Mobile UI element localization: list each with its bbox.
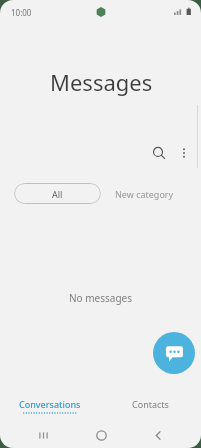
staticText: Conversations xyxy=(19,398,81,410)
staticText: All xyxy=(52,188,63,200)
button[interactable]: New category xyxy=(115,183,174,204)
staticText: 10:00 xyxy=(11,7,32,18)
button[interactable]: Recent apps xyxy=(31,423,55,447)
staticText: No messages xyxy=(0,291,201,305)
button[interactable]: New conversation xyxy=(153,332,195,374)
staticText: New category xyxy=(115,188,174,200)
button[interactable]: Back xyxy=(146,423,170,447)
staticText: Messages xyxy=(50,67,153,97)
button[interactable]: Contacts xyxy=(100,394,201,418)
button[interactable]: Search xyxy=(147,141,171,165)
button[interactable]: Home xyxy=(89,423,113,447)
staticText: Contacts xyxy=(132,398,169,410)
button[interactable]: More options xyxy=(172,141,196,165)
button[interactable]: All xyxy=(14,183,101,204)
button[interactable]: Conversations xyxy=(0,394,100,418)
